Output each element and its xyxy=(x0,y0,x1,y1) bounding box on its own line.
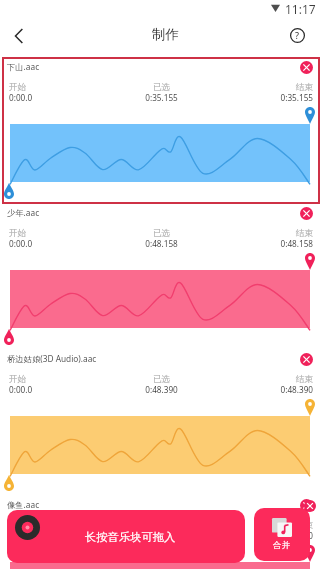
staticText: 0:00.0 xyxy=(9,384,111,395)
staticText: 开始 xyxy=(9,82,111,93)
staticText: 结束 xyxy=(212,374,313,385)
staticText: 0:48.158 xyxy=(212,238,313,249)
button[interactable]: 像鱼.aac xyxy=(0,495,320,569)
button[interactable]: Help xyxy=(280,18,314,52)
staticText: 0:00.0 xyxy=(9,530,111,541)
staticText: 开始 xyxy=(9,520,111,531)
button[interactable]: Remove xyxy=(300,353,313,366)
staticText: 已选 xyxy=(111,82,212,93)
button[interactable]: 桥边姑娘(3D Audio).aac xyxy=(0,349,320,497)
staticText: 0:48.390 xyxy=(111,384,212,395)
staticText: 结束 xyxy=(212,520,313,531)
staticText: 已选 xyxy=(111,374,212,385)
button[interactable]: 下山.aac xyxy=(0,57,320,205)
button[interactable]: 少年.aac xyxy=(0,203,320,351)
staticText: 桥边姑娘(3D Audio).aac xyxy=(7,353,97,364)
staticText: 制作 xyxy=(152,26,180,43)
staticText: 下山.aac xyxy=(7,61,40,72)
staticText: 0:48.158 xyxy=(111,238,212,249)
staticText: 已选 xyxy=(111,228,212,239)
button[interactable]: Back xyxy=(2,19,36,53)
staticText: 0:35.155 xyxy=(111,92,212,103)
staticText: 少年.aac xyxy=(7,207,40,218)
button[interactable]: Remove xyxy=(300,499,313,512)
staticText: 长按音乐块可拖入 xyxy=(85,530,176,544)
staticText: 像鱼.aac xyxy=(7,499,40,510)
staticText: 11:17 xyxy=(285,1,316,17)
staticText: 0:48.390 xyxy=(212,384,313,395)
button[interactable]: Remove xyxy=(300,207,313,220)
staticText: 结束 xyxy=(212,82,313,93)
staticText: 0:48.390 xyxy=(212,530,313,541)
staticText: 开始 xyxy=(9,374,111,385)
staticText: 0:35.155 xyxy=(212,92,313,103)
staticText: 0:48.390 xyxy=(111,530,212,541)
button[interactable]: 合并 xyxy=(254,508,310,561)
staticText: 结束 xyxy=(212,228,313,239)
button[interactable]: Close merge xyxy=(304,500,316,512)
staticText: 0:00.0 xyxy=(9,92,111,103)
staticText: 开始 xyxy=(9,228,111,239)
button[interactable]: 长按音乐块可拖入 xyxy=(7,510,245,563)
staticText: 合并 xyxy=(273,540,291,551)
staticText: ? xyxy=(295,29,300,41)
staticText: 0:00.0 xyxy=(9,238,111,249)
button[interactable]: Remove xyxy=(300,61,313,74)
